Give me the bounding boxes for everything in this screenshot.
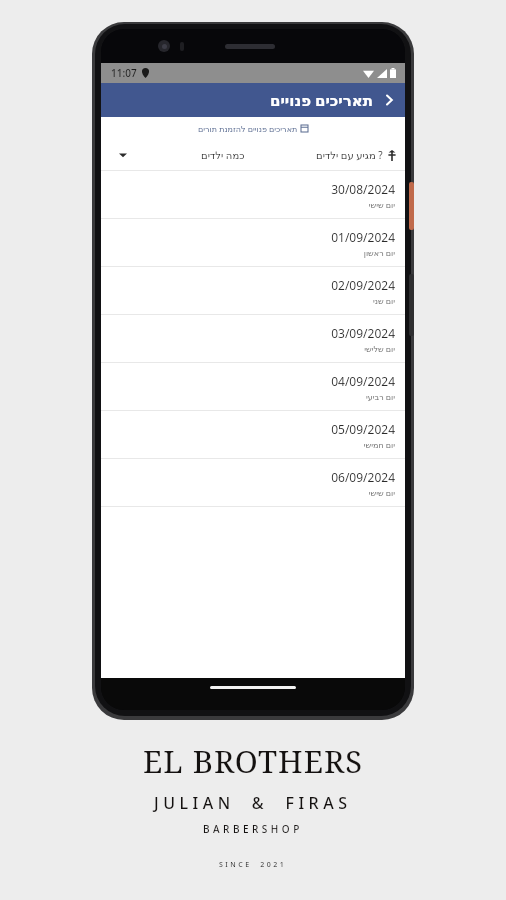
- button[interactable]: 04/09/2024: [101, 363, 405, 411]
- button[interactable]: 01/09/2024: [101, 219, 405, 267]
- staticText: תאריכים פנויים: [270, 90, 373, 110]
- staticText: כמה ילדים: [201, 148, 245, 162]
- staticText: 02/09/2024: [331, 277, 395, 293]
- staticText: יום שלישי: [364, 343, 395, 354]
- staticText: יום ראשון: [363, 247, 395, 258]
- staticText: יום רביעי: [365, 391, 395, 402]
- staticText: 05/09/2024: [331, 421, 395, 437]
- button[interactable]: 06/09/2024: [101, 459, 405, 507]
- staticText: תאריכים פנויים להזמנת תורים: [198, 123, 298, 134]
- button[interactable]: 02/09/2024: [101, 267, 405, 315]
- staticText: יום שישי: [368, 199, 395, 210]
- staticText: SINCE 2021: [219, 860, 287, 870]
- staticText: 01/09/2024: [331, 229, 395, 245]
- staticText: יום שני: [372, 295, 395, 306]
- staticText: 03/09/2024: [331, 325, 395, 341]
- staticText: 30/08/2024: [331, 181, 395, 197]
- button[interactable]: תאריכים פנויים להזמנת תורים: [101, 117, 405, 139]
- staticText: יום חמישי: [363, 439, 395, 450]
- button[interactable]: 05/09/2024: [101, 411, 405, 459]
- staticText: BARBERSHOP: [203, 822, 303, 836]
- staticText: 04/09/2024: [331, 373, 395, 389]
- button[interactable]: תאריכים פנויים: [270, 90, 373, 110]
- staticText: יום שישי: [368, 487, 395, 498]
- button[interactable]: 30/08/2024: [101, 171, 405, 219]
- staticText: EL BROTHERS: [143, 740, 364, 782]
- button[interactable]: [110, 139, 136, 171]
- staticText: מגיע עם ילדים ?: [316, 148, 383, 162]
- staticText: 06/09/2024: [331, 469, 395, 485]
- button[interactable]: Next: [373, 83, 405, 117]
- button[interactable]: 03/09/2024: [101, 315, 405, 363]
- staticText: 11:07: [111, 66, 137, 80]
- staticText: JULIAN & FIRAS: [154, 792, 352, 814]
